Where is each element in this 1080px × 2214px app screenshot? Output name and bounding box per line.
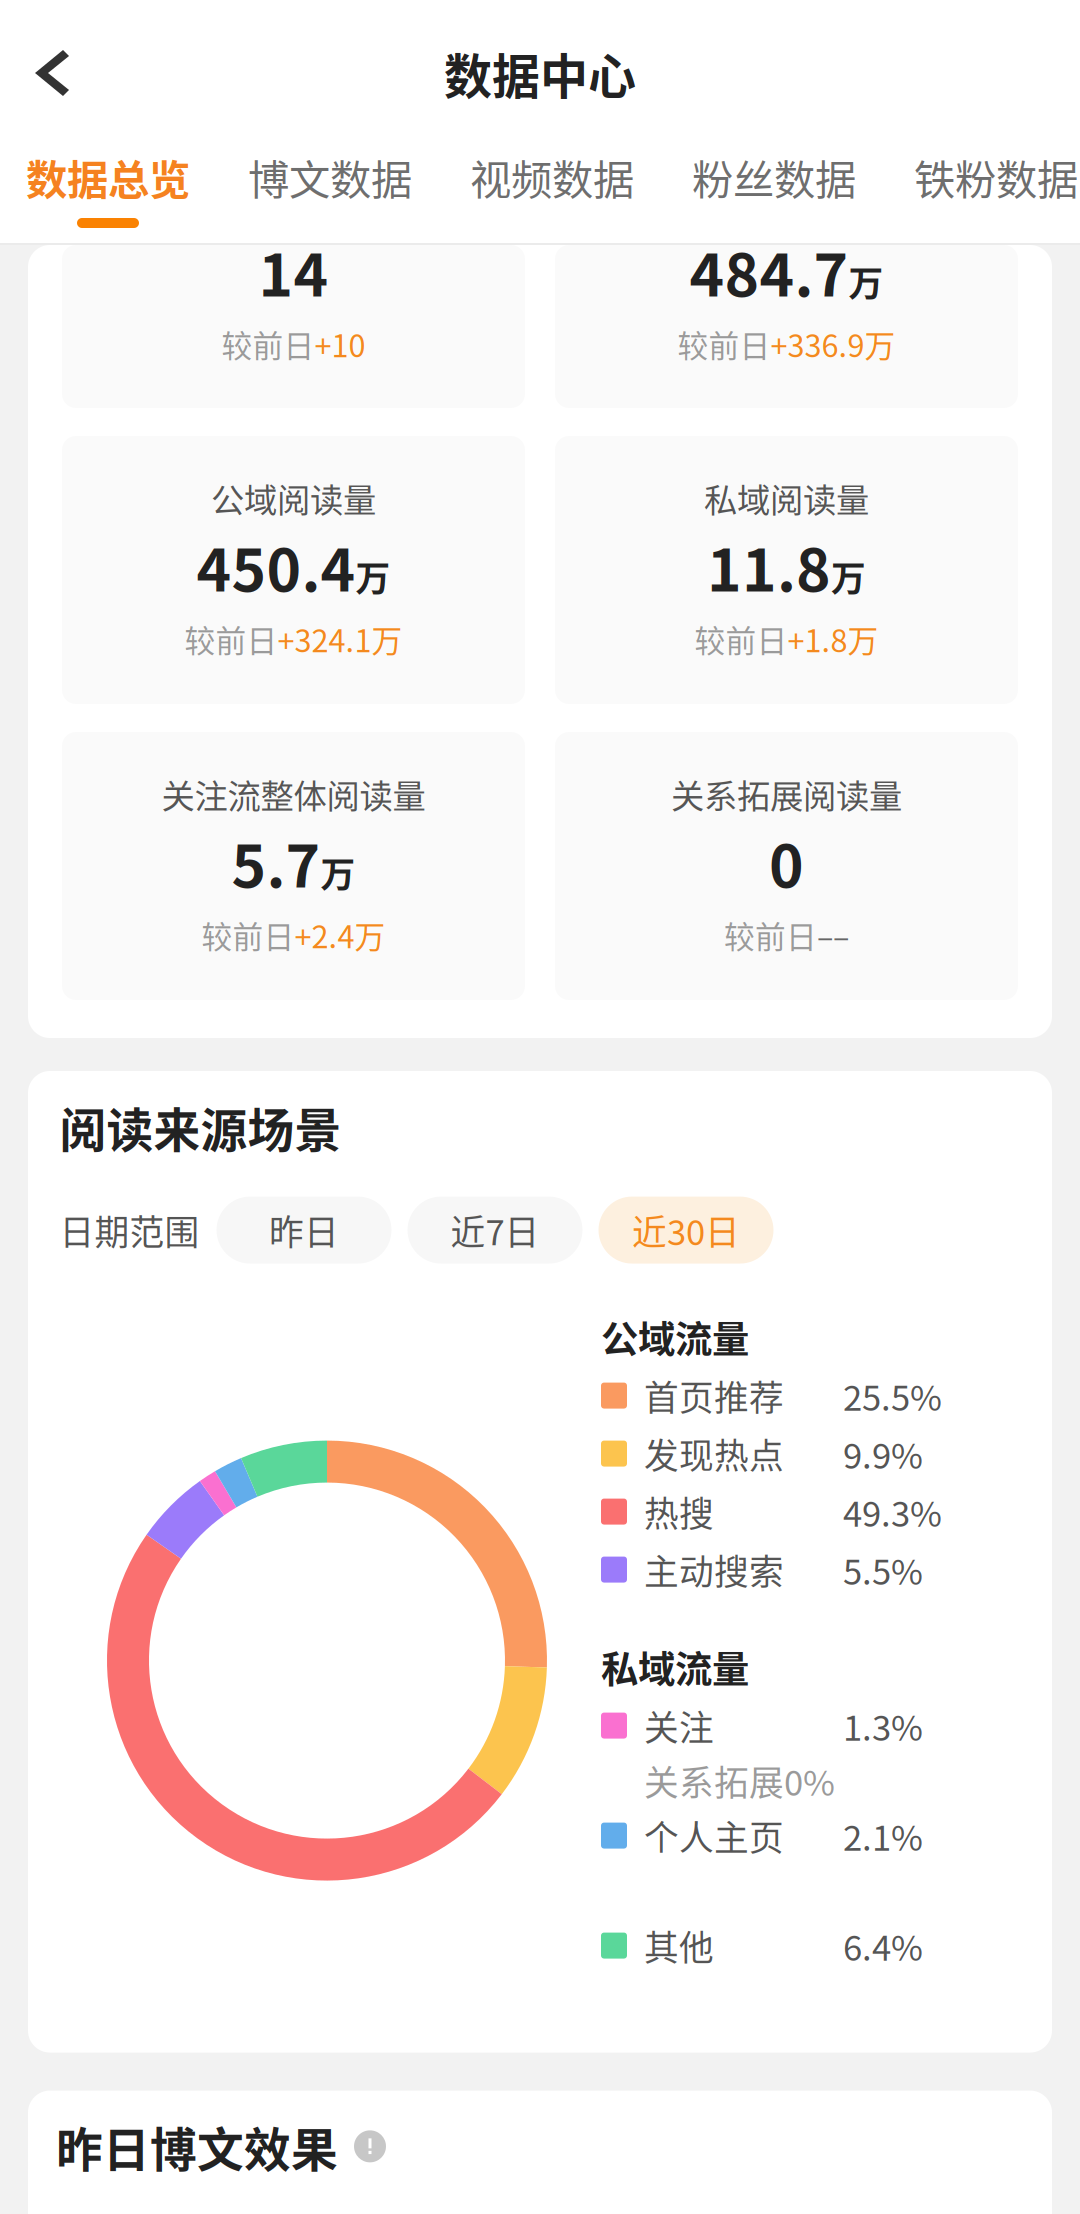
button[interactable]: 近7日 xyxy=(407,1197,582,1264)
staticText: 私域阅读量 xyxy=(704,474,869,522)
staticText: –– xyxy=(817,913,849,957)
staticText: 主动搜索 xyxy=(644,1544,784,1595)
staticText: 个人主页 xyxy=(644,1810,784,1861)
staticText: 万 xyxy=(355,551,390,602)
staticText: 公域阅读量 xyxy=(211,474,376,522)
staticText: 铁粉数据 xyxy=(914,147,1078,207)
staticText: 450.4 xyxy=(196,523,355,608)
staticText: 较前日 xyxy=(677,322,770,366)
staticText: 万 xyxy=(848,256,883,307)
button[interactable]: 昨日 xyxy=(216,1197,391,1264)
button[interactable]: 博文数据 xyxy=(219,147,441,228)
staticText: 6.4% xyxy=(843,1920,923,1971)
staticText: +324.1万 xyxy=(277,617,402,661)
staticText: 9.9% xyxy=(843,1428,923,1479)
button[interactable]: Info about yesterday's post performance xyxy=(354,2122,386,2170)
staticText: 5.7 xyxy=(231,819,320,904)
staticText: 数据总览 xyxy=(26,147,190,207)
staticText: 较前日 xyxy=(201,913,294,957)
staticText: 博文数据 xyxy=(248,147,412,207)
staticText: 25.5% xyxy=(843,1370,942,1421)
staticText: 11.8 xyxy=(707,523,831,608)
staticText: 昨日 xyxy=(269,1205,339,1255)
staticText: 万 xyxy=(320,847,355,898)
button[interactable]: 视频数据 xyxy=(441,147,663,228)
button[interactable]: 数据总览 xyxy=(0,147,219,228)
staticText: 较前日 xyxy=(184,617,277,661)
staticText: 公域流量 xyxy=(601,1310,749,1364)
staticText: 关系拓展阅读量 xyxy=(671,770,902,818)
staticText: 万 xyxy=(831,551,866,602)
staticText: 1.3% xyxy=(843,1700,923,1751)
staticText: +10 xyxy=(314,322,365,366)
staticText: 昨日博文效果 xyxy=(56,2113,338,2180)
button[interactable]: 粉丝数据 xyxy=(663,147,885,228)
staticText: 数据中心 xyxy=(444,38,636,108)
staticText: 发现热点 xyxy=(644,1428,784,1479)
staticText: 热搜 xyxy=(644,1486,714,1537)
button[interactable]: 14 xyxy=(62,245,525,408)
button[interactable]: Back xyxy=(0,13,110,133)
staticText: 关系拓展0% xyxy=(644,1755,835,1806)
staticText: 0 xyxy=(769,819,804,904)
staticText: 14 xyxy=(258,228,328,313)
button[interactable]: 484.7 xyxy=(555,245,1018,408)
staticText: 日期范围 xyxy=(59,1205,199,1255)
staticText: +2.4万 xyxy=(294,913,385,957)
staticText: 阅读来源场景 xyxy=(59,1093,341,1161)
button[interactable]: 关系拓展阅读量 xyxy=(555,732,1018,1000)
staticText: +1.8万 xyxy=(787,617,878,661)
staticText: 49.3% xyxy=(843,1486,942,1537)
staticText: +336.9万 xyxy=(770,322,895,366)
staticText: 较前日 xyxy=(724,913,817,957)
staticText: 视频数据 xyxy=(470,147,634,207)
staticText: 较前日 xyxy=(694,617,787,661)
staticText: 关注流整体阅读量 xyxy=(161,770,425,818)
button[interactable]: 近30日 xyxy=(598,1197,773,1264)
staticText: 私域流量 xyxy=(601,1640,749,1694)
staticText: 近30日 xyxy=(632,1205,740,1255)
staticText: 较前日 xyxy=(221,322,314,366)
button[interactable]: 私域阅读量 xyxy=(555,436,1018,704)
staticText: 首页推荐 xyxy=(644,1370,784,1421)
staticText: 484.7 xyxy=(689,228,848,313)
staticText: 关注 xyxy=(644,1700,714,1751)
button[interactable]: 关注流整体阅读量 xyxy=(62,732,525,1000)
button[interactable]: 铁粉数据 xyxy=(885,147,1080,228)
staticText: 2.1% xyxy=(843,1810,923,1861)
button[interactable]: 公域阅读量 xyxy=(62,436,525,704)
staticText: 其他 xyxy=(644,1920,714,1971)
staticText: 近7日 xyxy=(450,1205,539,1255)
staticText: 粉丝数据 xyxy=(692,147,856,207)
staticText: 5.5% xyxy=(843,1544,923,1595)
